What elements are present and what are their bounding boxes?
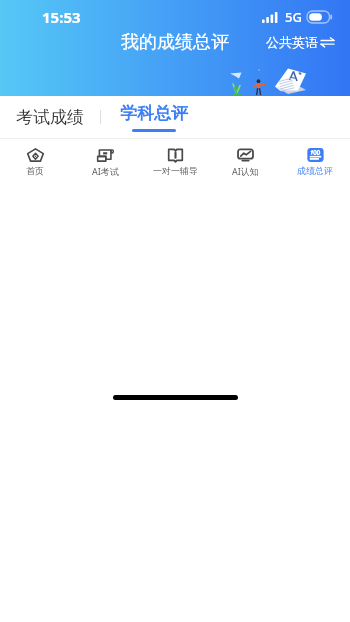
staticText: 首页 <box>26 165 44 176</box>
staticText: AI考试 <box>92 165 119 177</box>
staticText: 学科总评 <box>120 103 188 124</box>
staticText: 考试成绩 <box>16 107 84 128</box>
button[interactable]: 公共英语 <box>266 34 350 50</box>
staticText: 一对一辅导 <box>153 165 198 176</box>
staticText: 我的成绩总评 <box>121 31 229 54</box>
staticText: 成绩总评 <box>297 165 333 176</box>
button[interactable]: 成绩总评 <box>280 143 350 181</box>
button[interactable]: 一对一辅导 <box>140 143 210 181</box>
button[interactable]: 考试成绩 <box>0 99 100 136</box>
staticText: 公共英语 <box>266 34 318 50</box>
staticText: AI认知 <box>232 165 259 177</box>
staticText: 15:53 <box>42 7 81 27</box>
button[interactable]: 首页 <box>0 143 70 181</box>
staticText: 5G <box>285 8 302 26</box>
button[interactable]: AI认知 <box>210 143 280 181</box>
button[interactable]: 学科总评 <box>101 103 204 132</box>
button[interactable]: AI考试 <box>70 143 140 181</box>
